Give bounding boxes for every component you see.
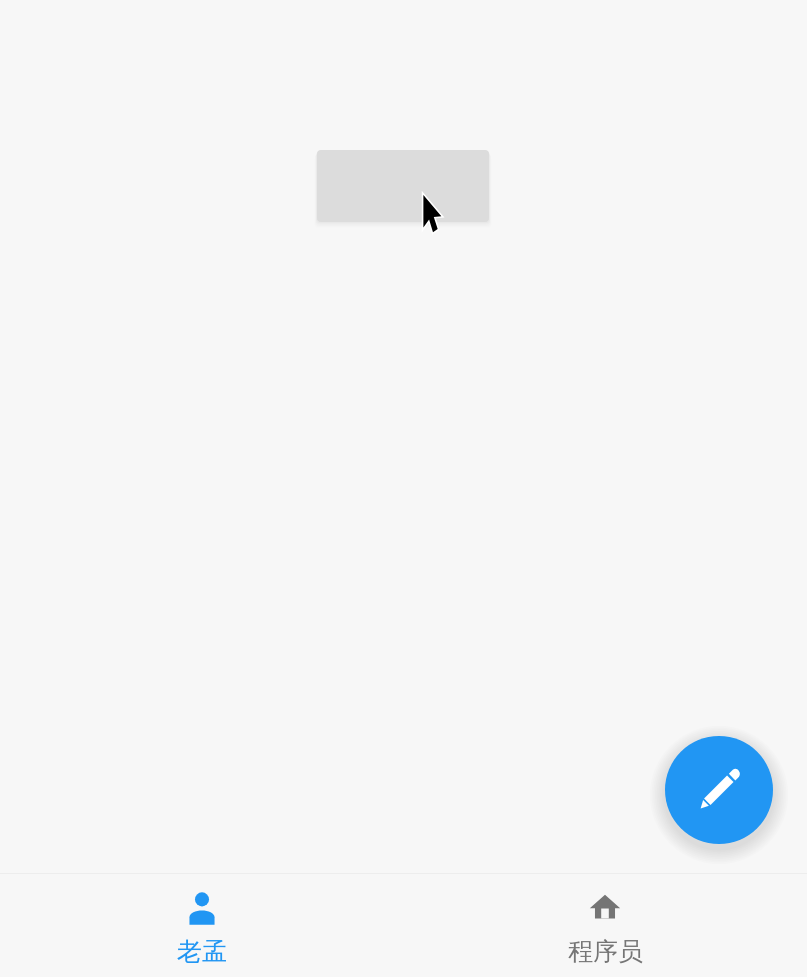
button[interactable] [317,150,489,222]
staticText: 老孟 [177,936,227,967]
button[interactable]: 程序员 [403,874,807,977]
button[interactable]: 老孟 [0,874,403,977]
button[interactable]: Edit [665,736,773,844]
staticText: 程序员 [568,936,643,967]
